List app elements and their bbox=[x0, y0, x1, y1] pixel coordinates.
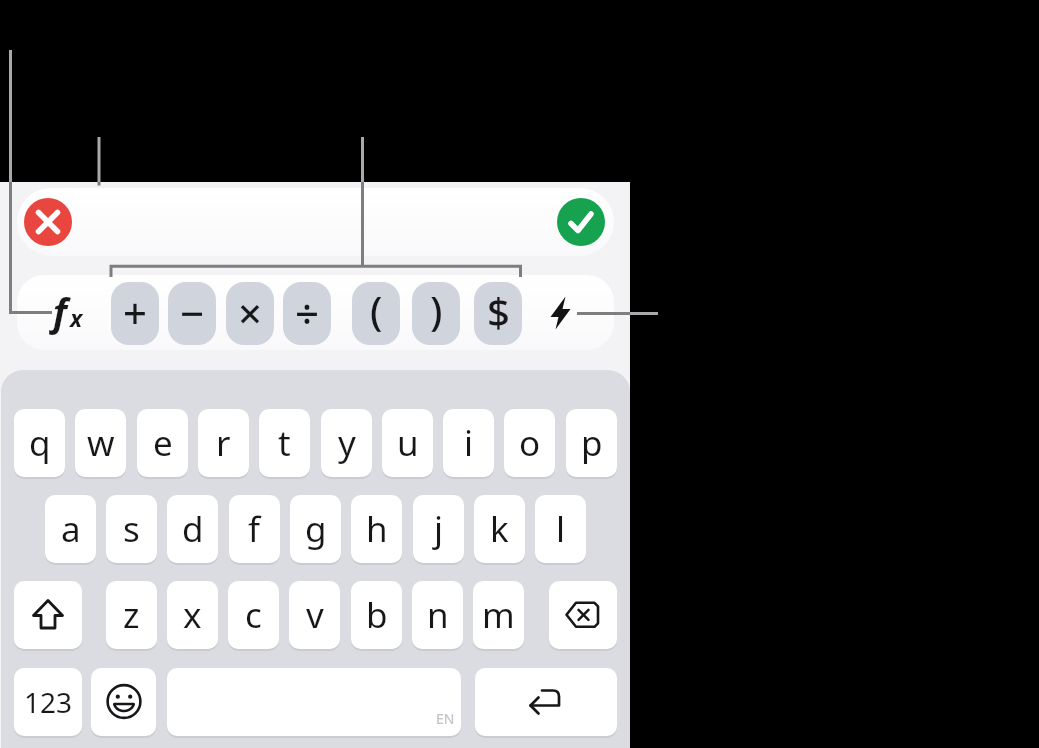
button[interactable]: f bbox=[44, 284, 92, 340]
staticText: h bbox=[366, 505, 388, 553]
staticText: f bbox=[248, 505, 261, 553]
staticText: s bbox=[123, 505, 140, 553]
button[interactable]: k bbox=[474, 495, 525, 563]
staticText: d bbox=[182, 505, 204, 553]
staticText: o bbox=[519, 419, 541, 467]
staticText: k bbox=[490, 505, 509, 553]
staticText: r bbox=[216, 419, 231, 467]
staticText: 123 bbox=[24, 683, 73, 721]
button[interactable]: w bbox=[75, 409, 126, 477]
button[interactable] bbox=[541, 277, 614, 349]
button[interactable]: ( bbox=[352, 282, 400, 345]
staticText: − bbox=[180, 284, 205, 341]
button[interactable]: d bbox=[167, 495, 218, 563]
staticText: $ bbox=[487, 284, 510, 338]
button[interactable]: q bbox=[14, 409, 65, 477]
button[interactable] bbox=[14, 581, 82, 649]
button[interactable]: + bbox=[111, 282, 159, 345]
button[interactable]: s bbox=[106, 495, 157, 563]
button[interactable]: n bbox=[412, 581, 463, 649]
staticText: b bbox=[366, 591, 388, 639]
button[interactable]: o bbox=[504, 409, 555, 477]
staticText: + bbox=[123, 284, 148, 341]
button[interactable]: a bbox=[45, 495, 96, 563]
button[interactable]: l bbox=[535, 495, 586, 563]
button[interactable]: p bbox=[566, 409, 617, 477]
button[interactable]: g bbox=[290, 495, 341, 563]
button[interactable]: h bbox=[351, 495, 402, 563]
staticText: m bbox=[482, 591, 515, 639]
staticText: ) bbox=[430, 283, 443, 337]
staticText: g bbox=[305, 505, 327, 553]
staticText: e bbox=[153, 419, 173, 467]
button[interactable]: m bbox=[473, 581, 524, 649]
button[interactable]: − bbox=[168, 282, 216, 345]
staticText: q bbox=[29, 419, 51, 467]
button[interactable]: u bbox=[382, 409, 433, 477]
staticText: u bbox=[397, 419, 419, 467]
staticText: EN bbox=[436, 709, 455, 728]
staticText: x bbox=[70, 302, 83, 333]
button[interactable]: x bbox=[167, 581, 218, 649]
button[interactable]: × bbox=[226, 282, 274, 345]
staticText: p bbox=[581, 419, 603, 467]
button[interactable] bbox=[91, 668, 156, 736]
button[interactable]: 123 bbox=[14, 668, 82, 736]
staticText: j bbox=[434, 505, 444, 553]
staticText: l bbox=[556, 505, 566, 553]
staticText: a bbox=[61, 505, 81, 553]
button[interactable]: j bbox=[413, 495, 464, 563]
staticText: ( bbox=[370, 283, 383, 337]
staticText: f bbox=[53, 286, 67, 336]
staticText: w bbox=[87, 419, 115, 467]
staticText: ÷ bbox=[295, 284, 320, 341]
button[interactable]: EN bbox=[167, 668, 461, 736]
button[interactable] bbox=[475, 668, 617, 736]
button[interactable]: r bbox=[198, 409, 249, 477]
button[interactable]: z bbox=[106, 581, 157, 649]
button[interactable]: t bbox=[259, 409, 310, 477]
button[interactable]: ) bbox=[412, 282, 460, 345]
button[interactable] bbox=[557, 198, 605, 246]
staticText: y bbox=[338, 419, 356, 467]
button[interactable] bbox=[24, 198, 72, 246]
staticText: x bbox=[183, 591, 202, 639]
button[interactable] bbox=[549, 581, 617, 649]
button[interactable]: y bbox=[321, 409, 372, 477]
staticText: t bbox=[278, 419, 291, 467]
button[interactable]: e bbox=[137, 409, 188, 477]
staticText: × bbox=[238, 284, 263, 341]
staticText: n bbox=[427, 591, 449, 639]
staticText: z bbox=[123, 591, 140, 639]
button[interactable]: f bbox=[229, 495, 280, 563]
staticText: i bbox=[464, 419, 474, 467]
button[interactable]: i bbox=[443, 409, 494, 477]
button[interactable]: $ bbox=[474, 282, 522, 345]
staticText: v bbox=[306, 591, 324, 639]
button[interactable]: c bbox=[228, 581, 279, 649]
button[interactable]: ÷ bbox=[283, 282, 331, 345]
button[interactable]: b bbox=[351, 581, 402, 649]
staticText: c bbox=[245, 591, 262, 639]
button[interactable]: v bbox=[289, 581, 340, 649]
